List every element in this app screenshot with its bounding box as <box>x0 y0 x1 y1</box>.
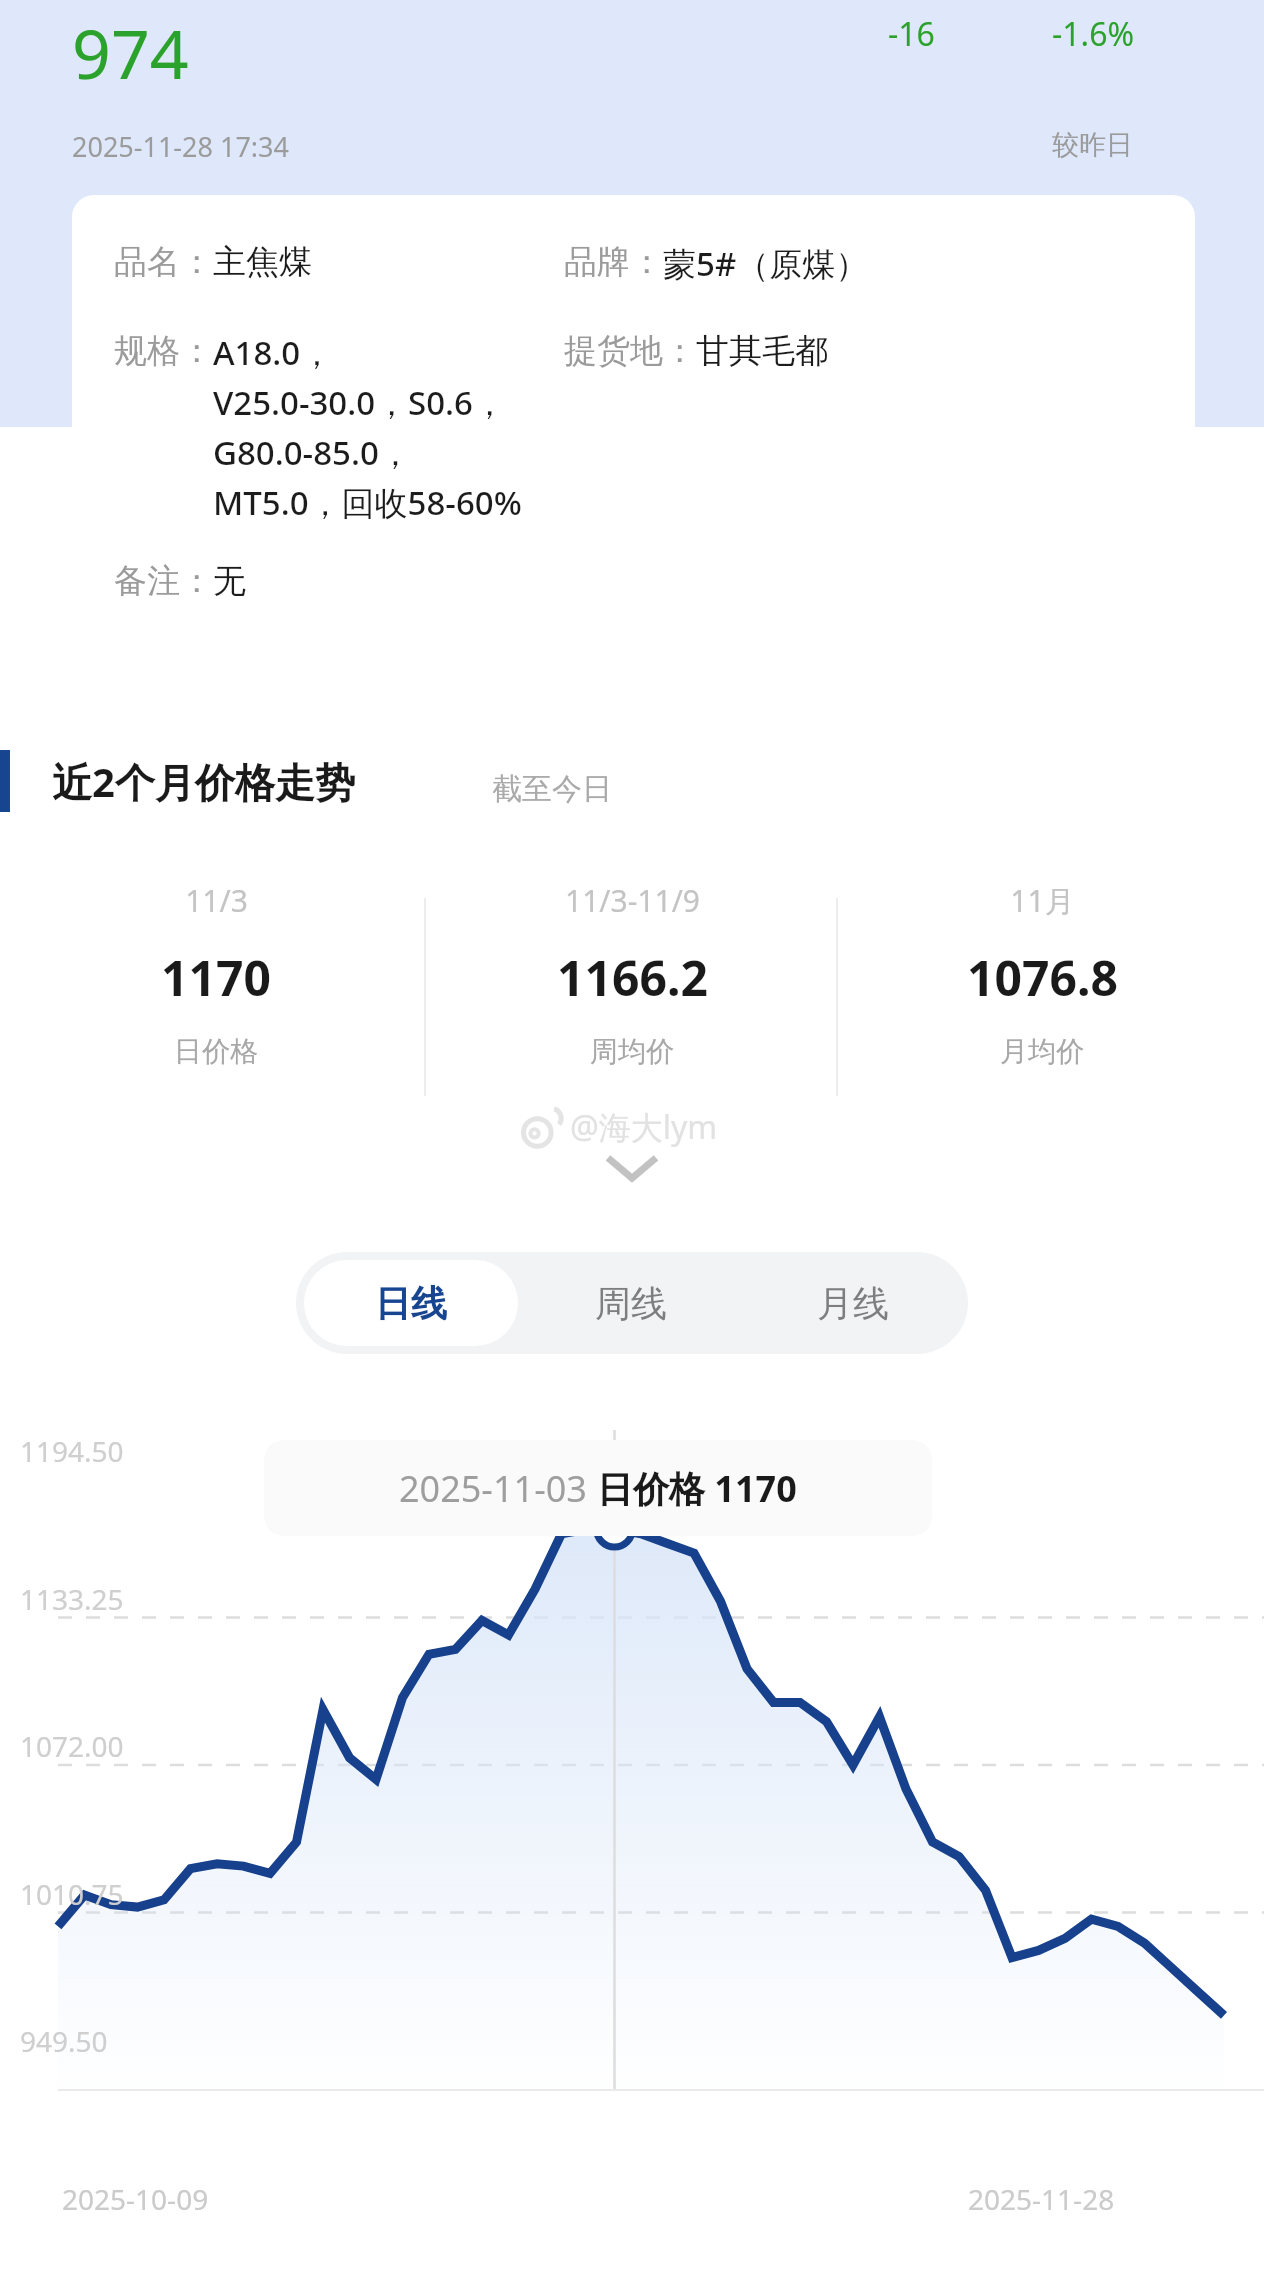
staticText: 近2个月价格走势 <box>52 754 355 809</box>
staticText: A18.0，V25.0-30.0，S0.6，G80.0-85.0，MT5.0，回… <box>213 330 523 524</box>
button[interactable]: 11/3-11/9 <box>432 880 832 1110</box>
staticText: 较昨日 <box>1052 128 1133 162</box>
staticText: 品牌： <box>564 241 663 283</box>
staticText: 1166.2 <box>557 945 708 1010</box>
staticText: 949.50 <box>20 2022 108 2060</box>
button[interactable]: 11/3 <box>16 880 416 1110</box>
button[interactable]: 周线 <box>524 1260 738 1346</box>
staticText: 1010.75 <box>20 1875 124 1913</box>
button[interactable]: 展开 <box>592 1140 672 1196</box>
staticText: 日线 <box>375 1281 447 1326</box>
button[interactable]: 月线 <box>746 1260 960 1346</box>
staticText: 备注： <box>114 560 213 602</box>
staticText: 2025-11-28 17:34 <box>72 128 289 165</box>
staticText: 月均价 <box>1000 1034 1084 1069</box>
staticText: 截至今日 <box>492 770 612 808</box>
button[interactable]: 2025-11-03 <box>264 1440 932 1536</box>
staticText: 日价格 <box>174 1034 258 1069</box>
staticText: @海大lym <box>570 1105 718 1149</box>
staticText: 规格： <box>114 330 213 372</box>
staticText: 2025-10-09 <box>62 2180 209 2218</box>
button[interactable]: 品名： <box>72 195 1195 700</box>
button[interactable]: 11月 <box>842 880 1242 1110</box>
staticText: 提货地： <box>564 330 696 372</box>
staticText: 月线 <box>817 1281 889 1326</box>
staticText: -1.6% <box>1052 12 1135 56</box>
button[interactable]: 日线 <box>304 1260 518 1346</box>
staticText: 甘其毛都 <box>696 330 828 372</box>
staticText: 1170 <box>161 945 271 1010</box>
staticText: 蒙5#（原煤） <box>663 241 869 286</box>
staticText: 品名： <box>114 241 213 283</box>
staticText: 周均价 <box>590 1034 674 1069</box>
staticText: 1072.00 <box>20 1727 124 1765</box>
staticText: 周线 <box>595 1281 667 1326</box>
staticText: 11/3-11/9 <box>565 880 700 921</box>
staticText: 无 <box>213 560 246 602</box>
staticText: 1076.8 <box>967 945 1118 1010</box>
staticText: -16 <box>888 12 935 56</box>
staticText: 11/3 <box>185 880 248 921</box>
staticText: 1133.25 <box>20 1580 124 1618</box>
staticText: 2025-11-03 <box>399 1464 597 1513</box>
staticText: 日价格 1170 <box>597 1464 797 1513</box>
staticText: 主焦煤 <box>213 241 312 283</box>
staticText: 1194.50 <box>20 1432 124 1470</box>
staticText: 2025-11-28 <box>968 2180 1115 2218</box>
staticText: 11月 <box>1010 880 1075 921</box>
staticText: 974 <box>72 6 189 99</box>
